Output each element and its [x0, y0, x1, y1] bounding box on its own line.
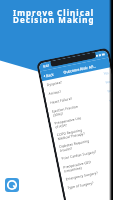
staticText: Improve Clinical Decision Making [13, 7, 95, 26]
button[interactable]: Ascites? [44, 76, 113, 99]
button[interactable]: COPD Requiring Medical Therapy? [52, 117, 113, 143]
staticText: Back [45, 72, 54, 78]
staticText: Yes [109, 98, 113, 103]
button[interactable]: Dyspnea? [42, 67, 112, 90]
staticText: Emergency Surgery? [65, 165, 113, 181]
staticText: Dyspnea? [46, 71, 104, 87]
staticText: 9:41 [43, 63, 50, 69]
staticText: Outcome Risk: AP... [63, 63, 96, 75]
button[interactable]: Type of Surgery? [63, 170, 113, 193]
button[interactable]: Heart Failure? [45, 85, 113, 108]
staticText: Yes [107, 89, 112, 93]
button[interactable]: Diabetes Requiring Insulin? [54, 129, 113, 155]
staticText: Yes [103, 71, 109, 76]
staticText: Heart Failure? [50, 89, 108, 105]
staticText: Ejection Fraction (30%)? [52, 97, 110, 118]
button[interactable]: Ejection Fraction (30%)? [47, 94, 113, 119]
button[interactable]: Back [42, 72, 54, 79]
staticText: Diabetes Requiring Insulin? [59, 133, 113, 153]
staticText: Preoperative GED (creatinine) [63, 153, 113, 174]
staticText: Ascites? [48, 80, 106, 96]
button[interactable]: Emergency Surgery? [61, 161, 113, 184]
button[interactable]: Preoperative Use of ASA? [50, 106, 113, 131]
button[interactable]: App logo [5, 178, 19, 192]
button[interactable]: Preoperative GED (creatinine) [58, 150, 113, 175]
button[interactable]: Prior Cardiac Surgery? [57, 141, 113, 164]
staticText: Preoperative Use of ASA? [54, 109, 112, 129]
staticText: Yes [105, 80, 111, 85]
staticText: Prior Cardiac Surgery? [61, 144, 113, 161]
staticText: COPD Requiring Medical Therapy? [56, 121, 113, 141]
staticText: Type of Surgery? [67, 174, 113, 190]
staticText: Yes [111, 110, 113, 115]
